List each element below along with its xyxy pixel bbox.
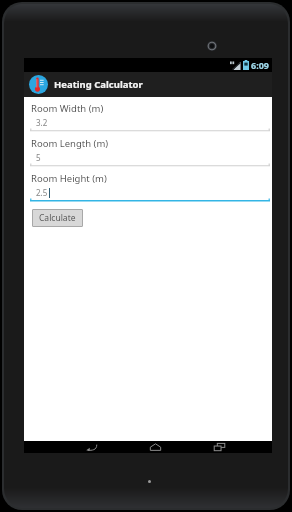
staticText: 2.5 xyxy=(36,187,48,198)
staticText: Room Width (m) xyxy=(31,102,104,115)
staticText: Heating Calculator xyxy=(54,78,143,91)
staticText: Calculate xyxy=(39,212,76,224)
staticText: Room Height (m) xyxy=(31,172,107,185)
staticText: 5 xyxy=(36,152,41,163)
button[interactable]: Calculate xyxy=(32,209,83,227)
button[interactable]: Room Height (m) xyxy=(30,170,270,205)
button[interactable]: Heating Calculator xyxy=(24,72,272,97)
staticText: 3.2 xyxy=(36,117,48,128)
button[interactable]: Room Width (m) xyxy=(30,100,270,135)
staticText: Room Length (m) xyxy=(31,137,109,150)
staticText: 6:09 xyxy=(251,59,269,71)
button[interactable]: Home xyxy=(140,441,170,453)
button[interactable]: Recent apps xyxy=(204,441,234,453)
button[interactable]: Back xyxy=(76,441,106,453)
button[interactable]: Room Length (m) xyxy=(30,135,270,170)
